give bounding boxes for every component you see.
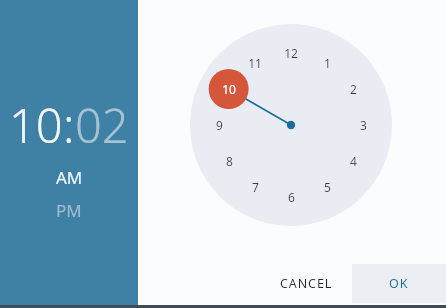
staticText: 6 — [288, 189, 295, 205]
button[interactable]: 12 — [277, 43, 305, 63]
button[interactable]: OK — [352, 264, 446, 303]
staticText: 8 — [226, 153, 233, 169]
button[interactable]: 6 — [277, 187, 305, 207]
staticText: OK — [389, 275, 409, 292]
button[interactable]: 4 — [339, 151, 367, 171]
button[interactable]: 9 — [205, 115, 233, 135]
staticText: 2 — [350, 81, 357, 97]
button[interactable]: 5 — [313, 177, 341, 197]
button[interactable]: 8 — [215, 151, 243, 171]
staticText: 7 — [252, 179, 259, 195]
button[interactable]: 7 — [241, 177, 269, 197]
staticText: 10 — [222, 81, 236, 97]
staticText: 1 — [324, 55, 331, 71]
button[interactable]: 1 — [313, 53, 341, 73]
staticText: PM — [56, 199, 82, 222]
staticText: 4 — [350, 153, 357, 169]
staticText: CANCEL — [280, 275, 333, 292]
button[interactable]: 11 — [241, 53, 269, 73]
staticText: : — [63, 93, 75, 157]
staticText: 3 — [360, 117, 367, 133]
button[interactable]: AM — [44, 163, 95, 192]
other: Clock face hour selector — [0, 0, 446, 308]
staticText: 12 — [284, 45, 298, 61]
staticText: 5 — [324, 179, 331, 195]
button[interactable]: CANCEL — [267, 264, 346, 303]
button[interactable]: 3 — [349, 115, 377, 135]
button[interactable]: 10 — [9, 93, 63, 157]
button[interactable]: PM — [44, 196, 94, 225]
button[interactable]: 2 — [339, 79, 367, 99]
staticText: 11 — [248, 55, 262, 71]
staticText: AM — [56, 166, 83, 189]
staticText: 9 — [216, 117, 223, 133]
button[interactable]: 10 — [215, 79, 243, 99]
button[interactable]: 02 — [75, 93, 129, 157]
